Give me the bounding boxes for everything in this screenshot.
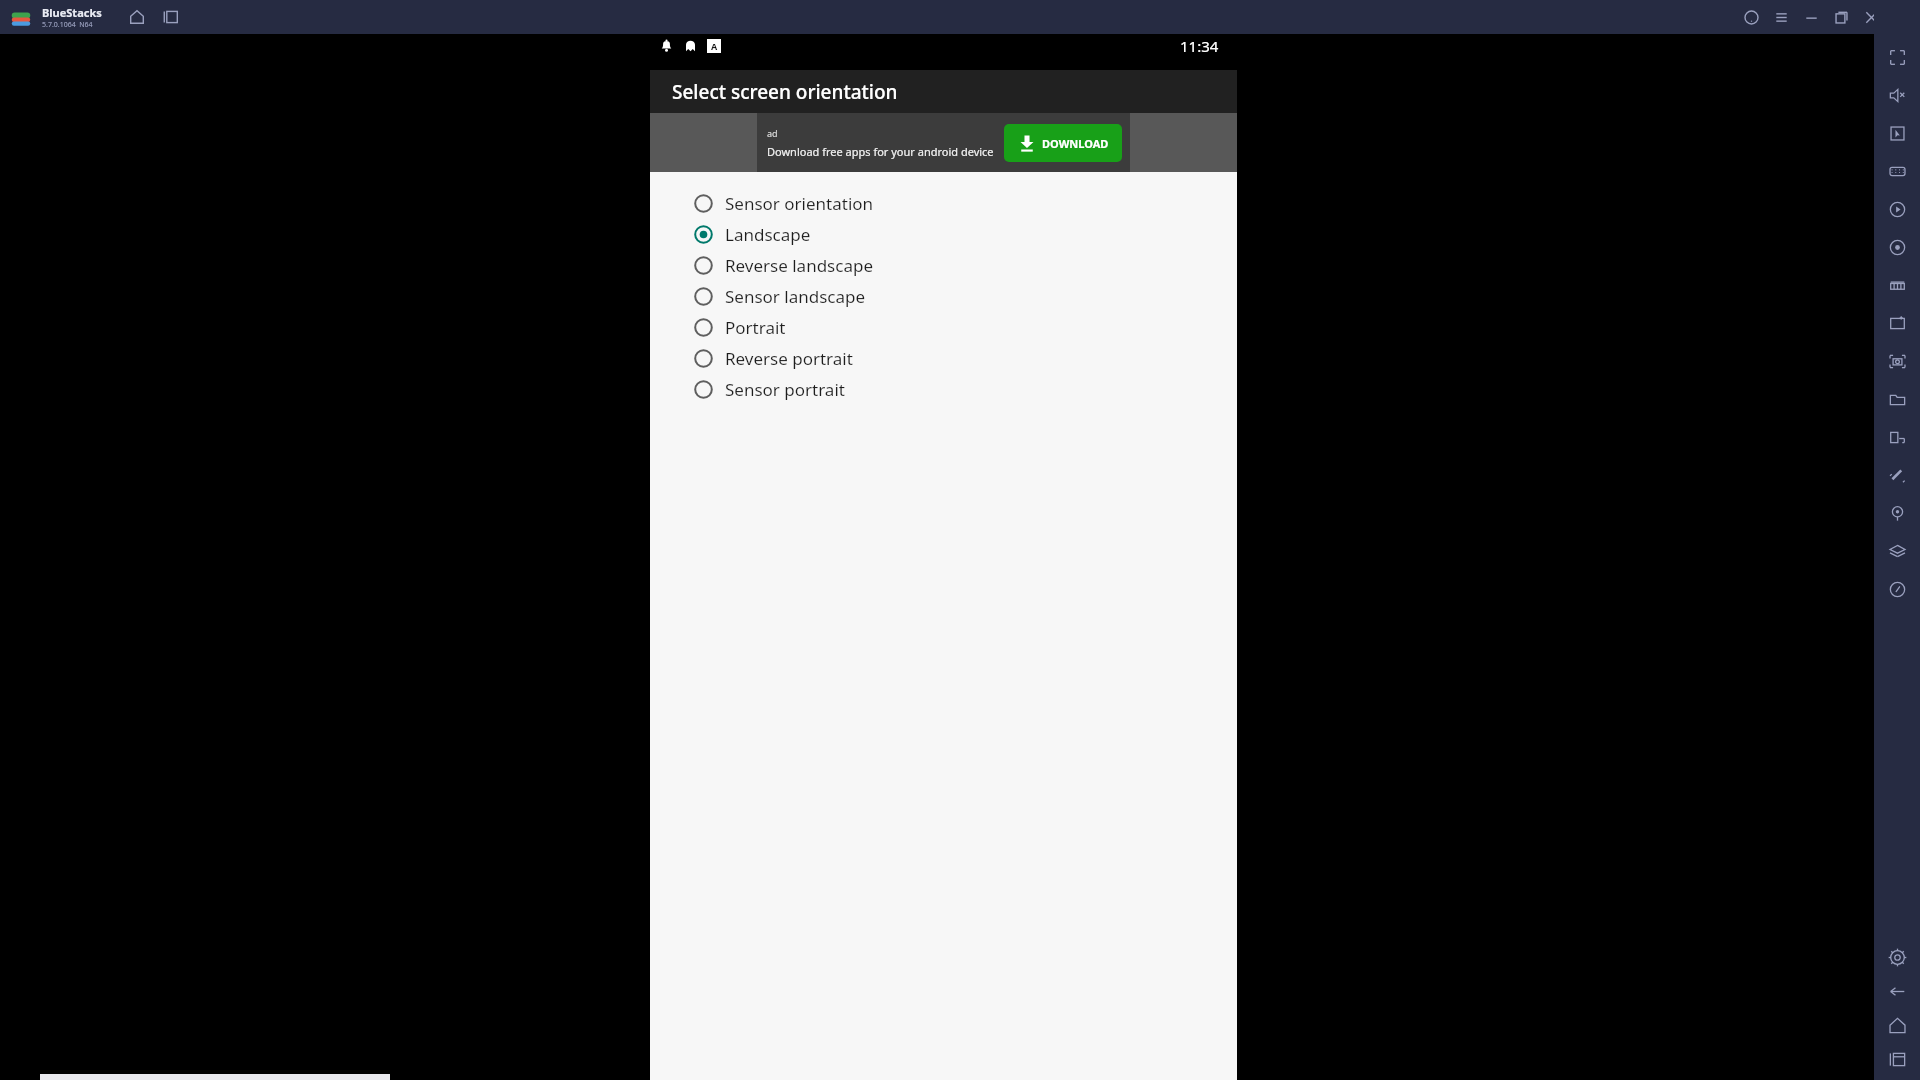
staticText: Reverse landscape bbox=[725, 254, 873, 277]
button[interactable]: Media folder bbox=[1880, 382, 1914, 416]
button[interactable]: Rotate bbox=[1880, 420, 1914, 454]
staticText: Download free apps for your android devi… bbox=[767, 144, 994, 159]
staticText: DOWNLOAD bbox=[1042, 136, 1109, 151]
button[interactable]: Maximize bbox=[1826, 2, 1856, 32]
staticText: Portrait bbox=[725, 316, 786, 339]
staticText: Sensor orientation bbox=[725, 192, 874, 215]
button[interactable]: Sensor portrait bbox=[650, 374, 1237, 405]
button[interactable]: Menu bbox=[1766, 2, 1796, 32]
button[interactable]: Cursor bbox=[1880, 116, 1914, 150]
staticText: Sensor portrait bbox=[725, 378, 845, 401]
staticText: Landscape bbox=[725, 223, 811, 246]
staticText: 11:34 bbox=[1180, 36, 1219, 56]
staticText: A bbox=[711, 40, 718, 52]
button[interactable]: Keyboard bbox=[1880, 154, 1914, 188]
staticText: Reverse portrait bbox=[725, 347, 853, 370]
button[interactable]: Gyroscope bbox=[1880, 572, 1914, 606]
button[interactable]: Portrait bbox=[650, 312, 1237, 343]
button[interactable]: Install APK bbox=[1880, 306, 1914, 340]
button[interactable]: Home bbox=[1880, 1008, 1914, 1042]
button[interactable]: Minimize bbox=[1796, 2, 1826, 32]
button[interactable]: Landscape bbox=[650, 219, 1237, 250]
button[interactable]: Close bbox=[1856, 2, 1886, 32]
button[interactable]: Mute bbox=[1880, 78, 1914, 112]
button[interactable]: Help bbox=[1736, 2, 1766, 32]
staticText: Select screen orientation bbox=[672, 79, 898, 105]
button[interactable]: Multi instance bbox=[1880, 268, 1914, 302]
button[interactable]: Back bbox=[1880, 974, 1914, 1008]
button[interactable]: Reverse landscape bbox=[650, 250, 1237, 281]
staticText: ad bbox=[767, 127, 778, 139]
button[interactable]: DOWNLOAD bbox=[1004, 124, 1122, 162]
button[interactable]: Settings bbox=[1880, 940, 1914, 974]
button[interactable]: Shake bbox=[1880, 458, 1914, 492]
button[interactable]: Macro record bbox=[1880, 192, 1914, 226]
button[interactable]: ad bbox=[757, 113, 1130, 172]
button[interactable]: Reverse portrait bbox=[650, 343, 1237, 374]
button[interactable]: Location bbox=[1880, 496, 1914, 530]
button[interactable]: Sensor orientation bbox=[650, 188, 1237, 219]
button[interactable]: Screenshot bbox=[1880, 344, 1914, 378]
button[interactable]: Sensor landscape bbox=[650, 281, 1237, 312]
button[interactable]: Home bbox=[124, 4, 150, 30]
button[interactable]: Recents bbox=[158, 4, 184, 30]
button[interactable]: Recents bbox=[1880, 1042, 1914, 1076]
button[interactable]: Fullscreen bbox=[1880, 40, 1914, 74]
button[interactable]: Macro play bbox=[1880, 230, 1914, 264]
button[interactable]: Layers bbox=[1880, 534, 1914, 568]
staticText: BlueStacks bbox=[42, 5, 102, 20]
staticText: 5.7.0.1064 N64 bbox=[42, 20, 93, 30]
staticText: Sensor landscape bbox=[725, 285, 866, 308]
